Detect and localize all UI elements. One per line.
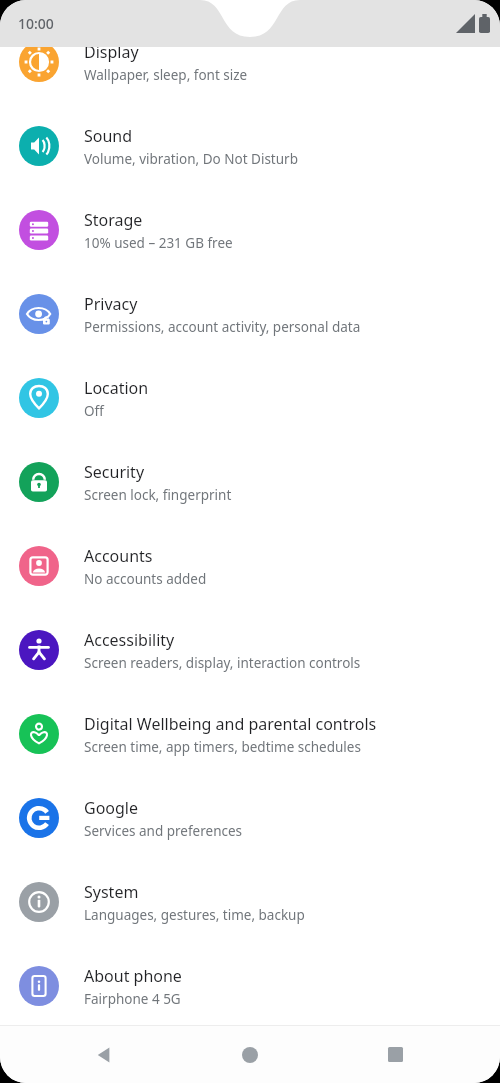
button[interactable]: Privacy (0, 272, 500, 356)
staticText: Sound (84, 125, 133, 147)
staticText: Wallpaper, sleep, font size (84, 66, 248, 84)
staticText: 10:00 (18, 14, 54, 33)
staticText: Volume, vibration, Do Not Disturb (84, 150, 298, 168)
staticText: Permissions, account activity, personal … (84, 318, 361, 336)
button[interactable]: System (0, 860, 500, 944)
button[interactable]: Security (0, 440, 500, 524)
button[interactable]: Home (217, 1026, 283, 1083)
staticText: System (84, 881, 139, 903)
button[interactable]: Digital Wellbeing and parental controls (0, 692, 500, 776)
button[interactable]: Accessibility (0, 608, 500, 692)
staticText: Services and preferences (84, 822, 243, 840)
staticText: Off (84, 402, 104, 420)
staticText: Screen time, app timers, bedtime schedul… (84, 738, 361, 756)
staticText: Languages, gestures, time, backup (84, 906, 305, 924)
button[interactable]: Accounts (0, 524, 500, 608)
staticText: 10% used – 231 GB free (84, 234, 233, 252)
button[interactable]: Location (0, 356, 500, 440)
staticText: Digital Wellbeing and parental controls (84, 713, 377, 735)
staticText: About phone (84, 965, 182, 987)
staticText: Accounts (84, 545, 153, 567)
button[interactable]: Back (72, 1026, 138, 1083)
button[interactable]: About phone (0, 944, 500, 1028)
staticText: Screen lock, fingerprint (84, 486, 232, 504)
button[interactable]: Sound (0, 104, 500, 188)
button[interactable]: Google (0, 776, 500, 860)
staticText: Accessibility (84, 629, 175, 651)
staticText: Fairphone 4 5G (84, 990, 181, 1008)
button[interactable]: Display (0, 20, 500, 104)
button[interactable]: Recent apps (362, 1026, 428, 1083)
staticText: Security (84, 461, 145, 483)
staticText: Screen readers, display, interaction con… (84, 654, 361, 672)
staticText: Privacy (84, 293, 138, 315)
staticText: Storage (84, 209, 143, 231)
button[interactable]: Storage (0, 188, 500, 272)
staticText: Google (84, 797, 139, 819)
staticText: No accounts added (84, 570, 207, 588)
staticText: Location (84, 377, 149, 399)
staticText: Display (84, 41, 139, 63)
